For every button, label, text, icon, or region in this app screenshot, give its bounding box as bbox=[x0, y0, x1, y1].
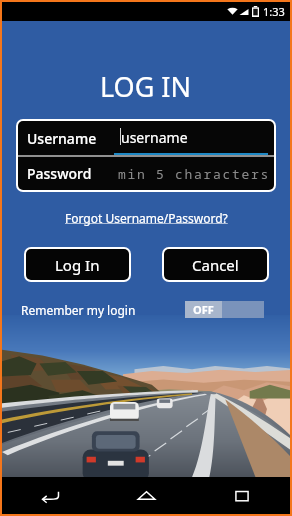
staticText: Log In bbox=[55, 255, 100, 275]
staticText: OFF bbox=[193, 302, 214, 317]
staticText: 1:33 bbox=[263, 4, 285, 19]
staticText: LOG IN bbox=[100, 68, 192, 105]
button[interactable]: Password bbox=[18, 157, 274, 190]
staticText: Cancel bbox=[192, 255, 239, 275]
button[interactable]: Forgot Username/Password? bbox=[65, 210, 228, 226]
staticText: Username bbox=[27, 129, 97, 148]
button[interactable]: Cancel bbox=[164, 249, 267, 280]
button[interactable]: Home bbox=[98, 477, 194, 514]
staticText: Remember my login bbox=[21, 302, 136, 318]
staticText: username bbox=[121, 128, 188, 147]
button[interactable]: Username bbox=[18, 121, 274, 155]
button[interactable]: Log In bbox=[26, 249, 129, 280]
staticText: min 5 characters bbox=[118, 165, 271, 183]
button[interactable]: Back bbox=[2, 477, 98, 514]
button[interactable]: OFF bbox=[185, 301, 264, 318]
staticText: Password bbox=[27, 164, 92, 183]
button[interactable]: Recent apps bbox=[194, 477, 290, 514]
